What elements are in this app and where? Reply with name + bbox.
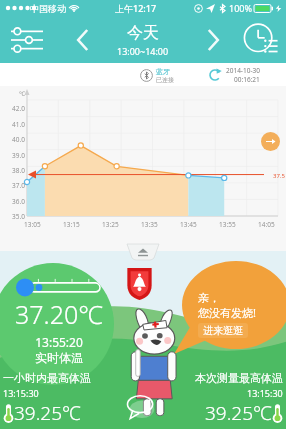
staticText: 39.25℃ xyxy=(205,400,272,426)
button[interactable]: 发烧报警 xyxy=(126,267,153,300)
button[interactable]: 同步时间 xyxy=(208,66,260,84)
button[interactable]: 设置 xyxy=(5,18,49,62)
staticText: 上午12:17 xyxy=(115,2,157,14)
staticText: 13:15:30 xyxy=(3,387,39,399)
staticText: 今天 xyxy=(127,23,159,43)
button[interactable]: 进来逛逛 xyxy=(198,323,248,338)
button[interactable]: 亲， xyxy=(174,261,286,359)
staticText: 2014-10-30 xyxy=(226,66,260,75)
staticText: 00:16:21 xyxy=(234,75,260,84)
staticText: 亲， xyxy=(198,291,220,305)
staticText: 13:15:30 xyxy=(247,387,283,399)
staticText: 37.0 xyxy=(12,181,25,190)
button[interactable]: 展开 xyxy=(125,244,161,260)
button[interactable]: 后一天 xyxy=(196,23,230,57)
staticText: 42.0 xyxy=(12,104,25,113)
staticText: 100% xyxy=(229,2,252,14)
staticText: 37.20℃ xyxy=(15,297,103,331)
staticText: 13:35 xyxy=(141,220,158,229)
staticText: 13:05 xyxy=(24,220,41,229)
staticText: 13:25 xyxy=(102,220,119,229)
button[interactable]: 前一天 xyxy=(66,23,100,57)
button[interactable]: 一小时内最高体温 xyxy=(3,371,128,426)
staticText: 13:00~14:00 xyxy=(117,45,169,57)
staticText: 进来逛逛 xyxy=(203,324,243,337)
staticText: 实时体温 xyxy=(35,350,83,365)
staticText: 40.0 xyxy=(12,135,25,144)
staticText: 38.0 xyxy=(12,166,25,175)
staticText: 39.0 xyxy=(12,151,25,160)
staticText: 39.25℃ xyxy=(14,400,81,426)
staticText: 41.0 xyxy=(12,120,25,129)
staticText: 36.0 xyxy=(12,197,25,206)
button[interactable]: 下一页 xyxy=(261,132,280,151)
button[interactable]: 本次测量最高体温 xyxy=(158,371,283,426)
staticText: 13:45 xyxy=(180,220,197,229)
staticText: 一小时内最高体温 xyxy=(3,371,91,385)
staticText: 您没有发烧! xyxy=(198,305,256,320)
button[interactable]: 37.20℃ xyxy=(0,263,114,385)
staticText: 13:55:20 xyxy=(35,334,83,350)
staticText: 蓝牙 xyxy=(156,67,170,76)
staticText: 本次测量最高体温 xyxy=(195,371,283,385)
staticText: ℃ xyxy=(19,90,25,98)
staticText: 14:05 xyxy=(258,220,275,229)
button[interactable]: 消息 xyxy=(126,391,156,421)
staticText: 13:15 xyxy=(63,220,80,229)
button[interactable]: 今天 xyxy=(117,23,169,57)
staticText: 37.5 xyxy=(273,172,285,180)
button[interactable]: 蓝牙已连接 xyxy=(140,67,174,84)
staticText: 13:55 xyxy=(219,220,236,229)
staticText: 已连接 xyxy=(156,76,174,84)
button[interactable]: 历史记录 xyxy=(239,18,283,62)
staticText: 中国移动 xyxy=(30,3,66,14)
staticText: 35.0 xyxy=(12,212,25,221)
